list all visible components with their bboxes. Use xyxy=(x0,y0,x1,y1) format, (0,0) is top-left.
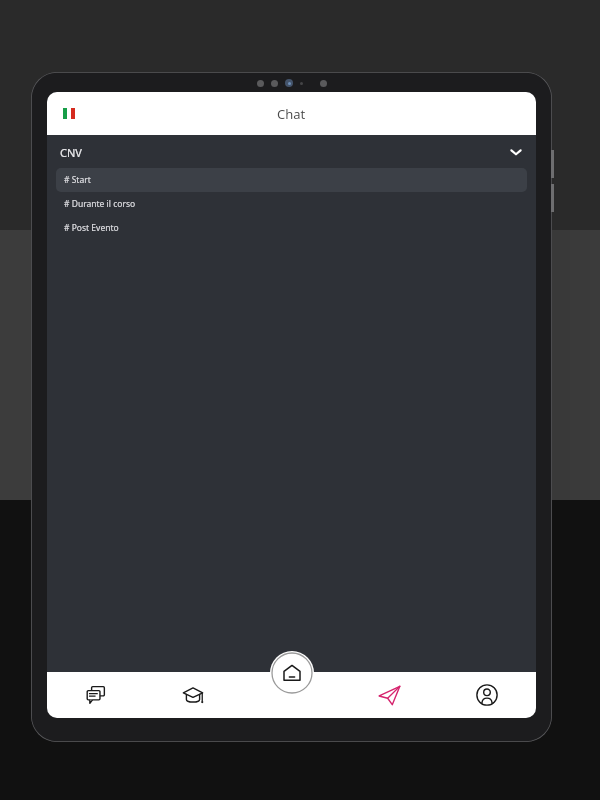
button[interactable]: # Durante il corso xyxy=(56,192,527,216)
staticText: # Durante il corso xyxy=(64,198,136,210)
button[interactable]: Courses xyxy=(144,672,242,718)
staticText: # Start xyxy=(64,174,91,186)
button[interactable]: # Start xyxy=(56,168,527,192)
button[interactable]: Language: Italian xyxy=(59,104,79,123)
staticText: # Post Evento xyxy=(64,222,119,234)
button[interactable]: Chat xyxy=(47,672,144,718)
button[interactable]: # Post Evento xyxy=(56,216,527,240)
button[interactable]: Profile xyxy=(438,672,536,718)
button[interactable]: Send xyxy=(340,672,438,718)
staticText: CNV xyxy=(60,145,82,160)
staticText: Chat xyxy=(277,105,306,123)
button[interactable]: CNV xyxy=(47,136,536,168)
button[interactable]: Home xyxy=(270,651,314,695)
